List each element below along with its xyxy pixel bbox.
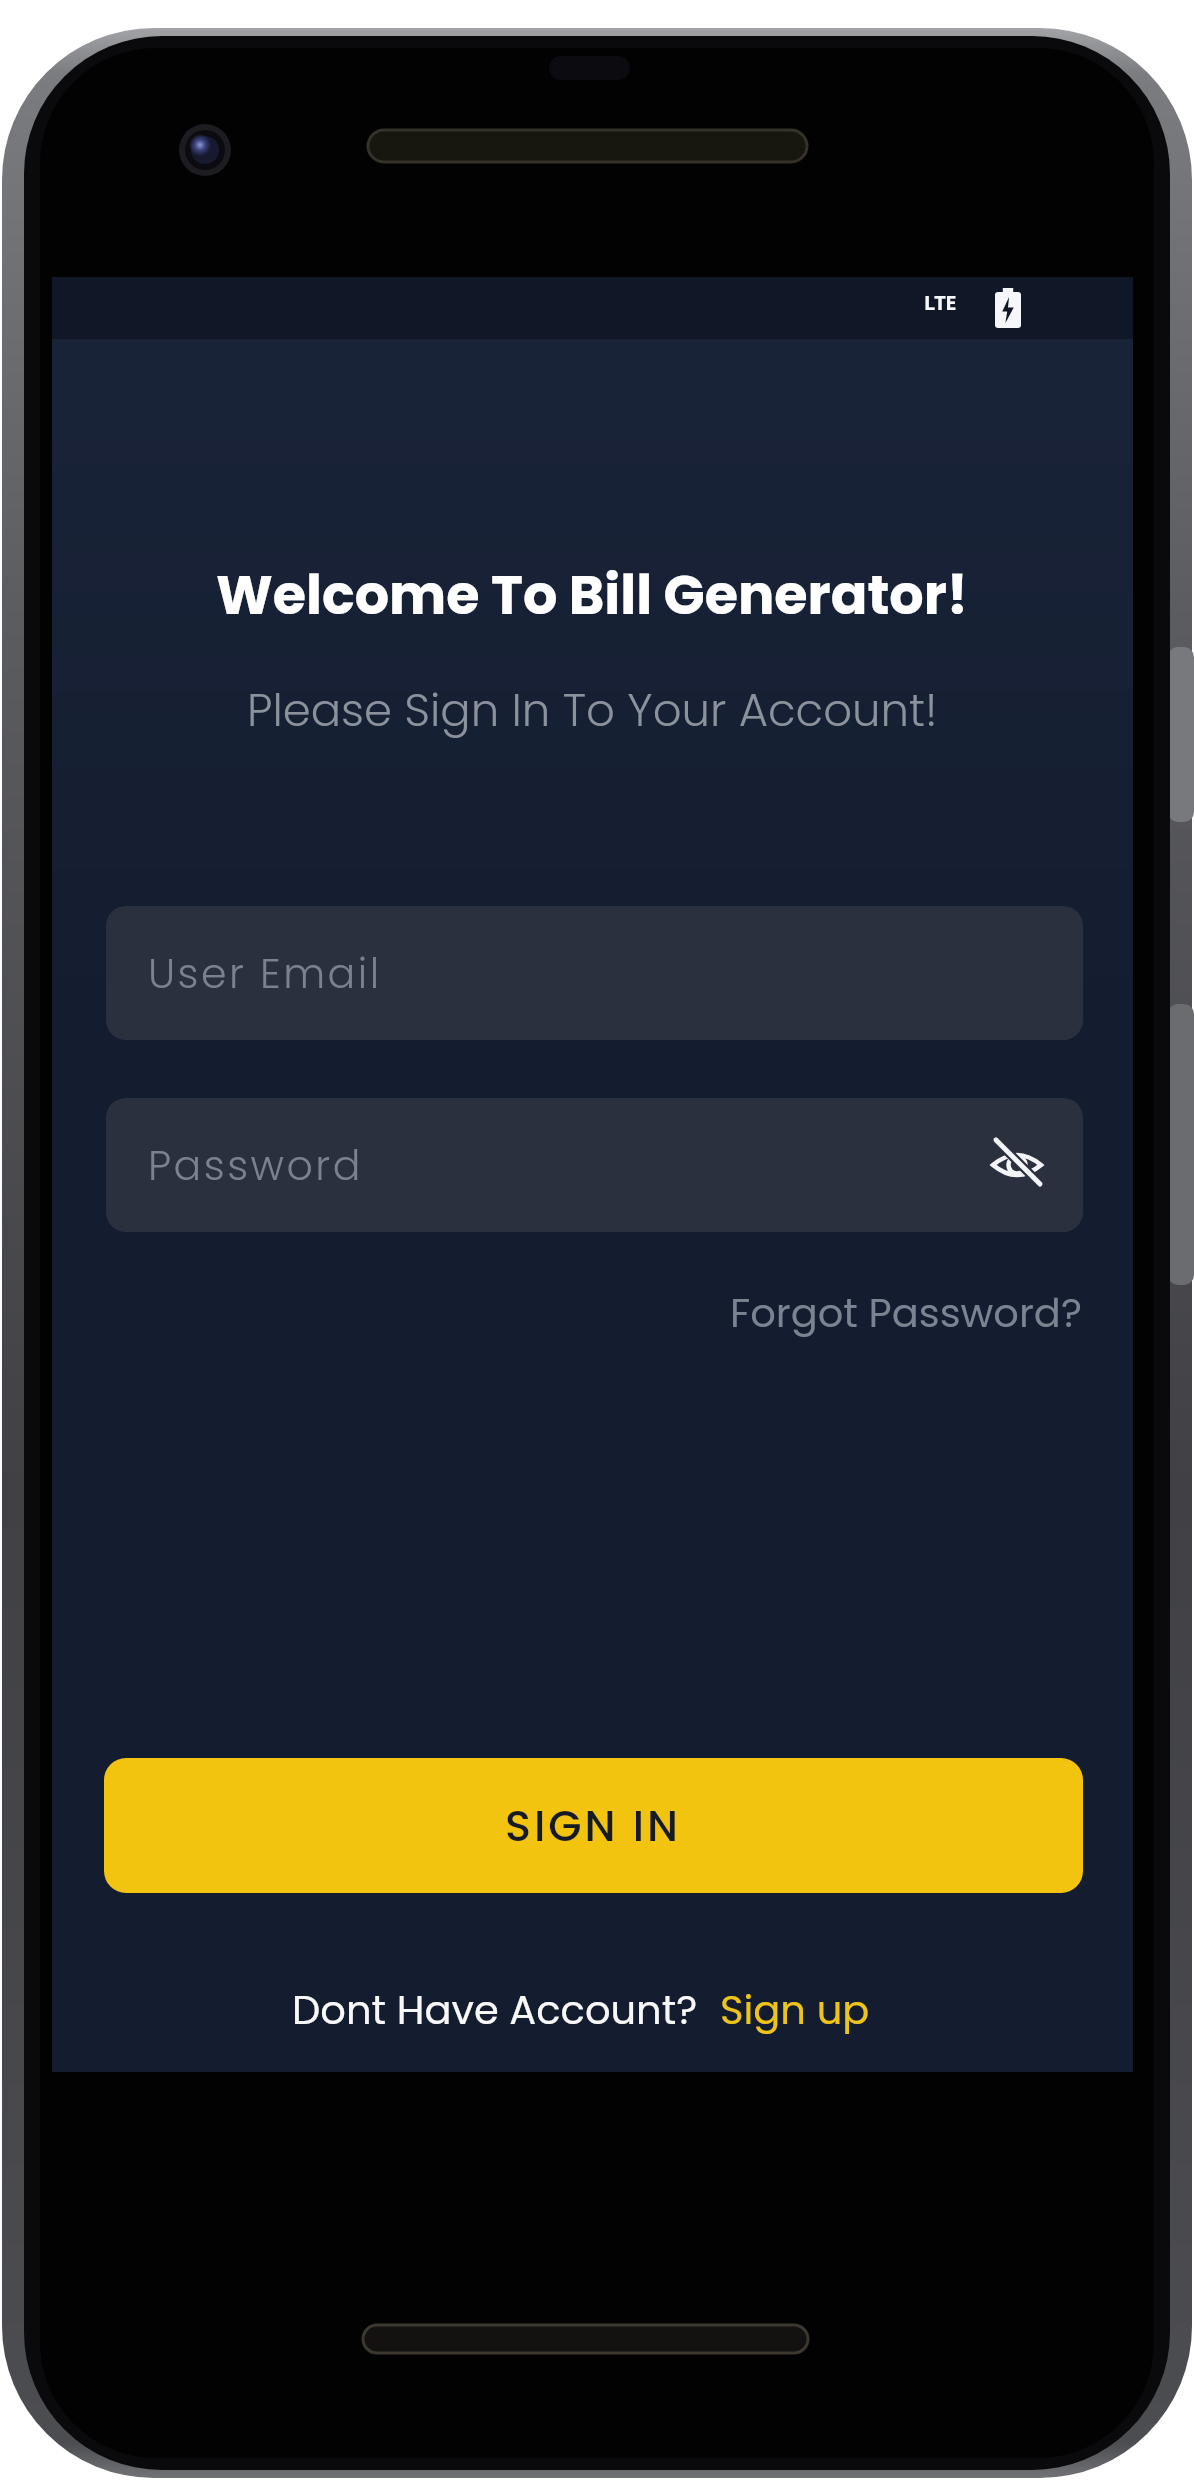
staticText: Sign up xyxy=(720,1982,870,2038)
button[interactable] xyxy=(989,1137,1045,1193)
staticText: Please Sign In To Your Account! xyxy=(247,679,938,742)
button[interactable]: Sign up xyxy=(720,1982,870,2038)
staticText: SIGN IN xyxy=(505,1796,682,1856)
button[interactable]: Forgot Password? xyxy=(730,1285,1082,1341)
button[interactable]: SIGN IN xyxy=(104,1758,1083,1893)
staticText: LTE xyxy=(924,289,957,316)
staticText: Password xyxy=(148,1137,363,1194)
button[interactable]: Password xyxy=(106,1098,1083,1232)
staticText: Welcome To Bill Generator! xyxy=(216,557,969,633)
staticText: User Email xyxy=(148,945,382,1002)
staticText: Dont Have Account? xyxy=(292,1982,698,2038)
staticText: Forgot Password? xyxy=(730,1285,1082,1341)
button[interactable]: User Email xyxy=(106,906,1083,1040)
